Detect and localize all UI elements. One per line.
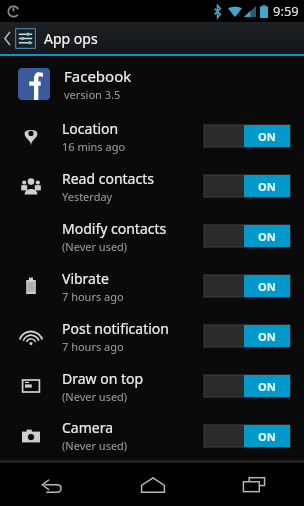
staticText: Read contacts <box>62 169 154 188</box>
staticText: Location <box>62 119 119 138</box>
staticText: Facebook <box>64 66 132 86</box>
staticText: ON <box>258 279 276 294</box>
staticText: Draw on top <box>62 369 144 388</box>
staticText: (Never used) <box>62 438 128 453</box>
staticText: ON <box>258 379 276 394</box>
staticText: Vibrate <box>62 269 109 288</box>
button[interactable]: Vibrate <box>0 261 304 311</box>
button[interactable]: Toggle, on <box>204 275 290 297</box>
button[interactable]: Toggle, on <box>204 325 290 347</box>
staticText: 7 hours ago <box>62 339 124 354</box>
button[interactable]: Draw on top <box>0 361 304 411</box>
button[interactable]: Back <box>0 463 102 506</box>
staticText: ON <box>258 329 276 344</box>
button[interactable]: Toggle, on <box>204 375 290 397</box>
button[interactable]: Toggle, on <box>204 125 290 147</box>
staticText: ON <box>258 429 276 444</box>
button[interactable]: Recent apps <box>203 463 304 506</box>
button[interactable]: Location <box>0 111 304 161</box>
staticText: ON <box>258 129 276 144</box>
button[interactable]: Facebook <box>0 56 304 111</box>
button[interactable]: Camera <box>0 411 304 460</box>
staticText: 9:59 <box>273 2 299 20</box>
staticText: 16 mins ago <box>62 139 126 154</box>
staticText: Modify contacts <box>62 219 167 238</box>
button[interactable]: Navigate up, App ops <box>0 28 108 49</box>
staticText: ON <box>258 179 276 194</box>
button[interactable]: Post notification <box>0 311 304 361</box>
staticText: 7 hours ago <box>62 289 124 304</box>
staticText: Post notification <box>62 319 169 338</box>
staticText: App ops <box>44 29 98 48</box>
staticText: (Never used) <box>62 389 128 404</box>
staticText: Camera <box>62 418 114 437</box>
staticText: version 3.5 <box>64 87 121 102</box>
button[interactable]: Toggle, on <box>204 175 290 197</box>
staticText: Yesterday <box>62 189 113 204</box>
button[interactable]: Toggle, on <box>204 425 290 447</box>
staticText: (Never used) <box>62 239 128 254</box>
button[interactable]: Toggle, on <box>204 225 290 247</box>
staticText: ON <box>258 229 276 244</box>
button[interactable]: Modify contacts <box>0 211 304 261</box>
button[interactable]: Read contacts <box>0 161 304 211</box>
button[interactable]: Home <box>102 463 203 506</box>
